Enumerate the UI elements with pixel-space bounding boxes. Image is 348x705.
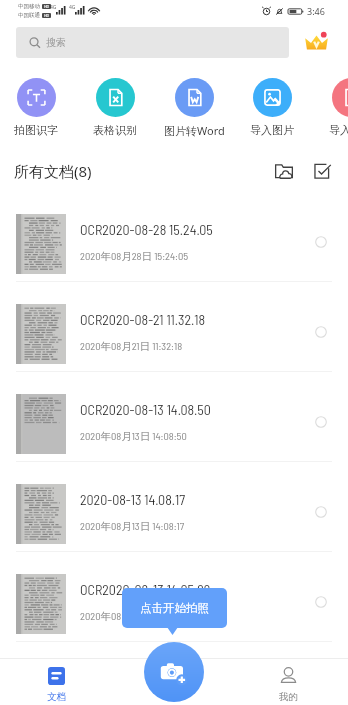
button[interactable]: 2020-08-13 14.08.17 [0,462,348,552]
staticText: 拍图识字 [14,123,58,137]
button[interactable]: 导入图片 [233,66,311,146]
button[interactable]: Take photo [144,642,204,702]
staticText: 中国联通 [18,12,40,19]
button[interactable]: 表格识别 [76,66,154,146]
staticText: 2020-08-13 14.08.17 [80,491,186,508]
staticText: 2020年08月13日 14:05:22 [80,609,187,623]
staticText: 搜索 [46,36,66,49]
button[interactable]: 我的 [256,667,320,703]
staticText: 表格识别 [93,123,137,137]
staticText: 点击开始拍照 [140,601,209,615]
button[interactable]: 文档 [24,667,88,703]
staticText: 导入图片 [250,123,294,137]
button[interactable]: 搜索 [16,27,289,58]
staticText: 4G [50,4,57,11]
staticText: 中国移动 [18,3,40,10]
staticText: 2020年08月13日 14:08:50 [80,429,187,443]
button[interactable]: 导入文档 [312,66,348,146]
button[interactable]: 图片转Word [155,66,233,146]
button[interactable]: OCR2020-08-13 14.08.50 [0,372,348,462]
staticText: 图片转Word [164,123,225,138]
button[interactable]: 点击开始拍照 [122,588,227,628]
staticText: 所有文档(8) [14,161,92,181]
button[interactable]: OCR2020-08-13 14.05.22 [0,552,348,642]
staticText: HD [44,4,50,9]
staticText: 我的 [279,691,298,703]
button[interactable]: OCR2020-08-28 15.24.05 [0,192,348,282]
staticText: 2020年08月28日 15:24:05 [80,249,189,263]
button[interactable]: Select [311,160,333,182]
staticText: 2020年08月13日 14:08:17 [80,519,185,533]
staticText: 文档 [47,691,66,703]
staticText: HD [44,13,50,18]
staticText: 2020年08月21日 11:32:18 [80,339,183,353]
staticText: OCR2020-08-21 11.32.18 [80,311,206,328]
button[interactable]: OCR2020-08-21 11.32.18 [0,282,348,372]
staticText: OCR2020-08-13 14.05.22 [80,581,211,598]
staticText: OCR2020-08-28 15.24.05 [80,221,213,238]
button[interactable]: 拍图识字 [0,66,75,146]
button[interactable]: Cloud documents [273,160,295,182]
staticText: OCR2020-08-13 14.08.50 [80,401,211,418]
button[interactable]: VIP [302,28,331,57]
staticText: 导入文档 [329,123,348,137]
staticText: 3:46 [307,5,325,17]
staticText: 4G [69,4,76,11]
